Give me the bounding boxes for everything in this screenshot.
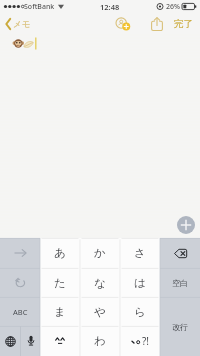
button[interactable]: あ	[40, 238, 80, 268]
staticText: た	[54, 276, 66, 290]
button[interactable]: 改行	[160, 297, 200, 356]
staticText: 完了	[174, 18, 193, 30]
staticText: SoftBank	[24, 2, 55, 12]
button[interactable]: Delete	[160, 238, 200, 268]
staticText: 12:48	[100, 2, 120, 12]
button[interactable]: は	[120, 268, 160, 297]
button[interactable]: Add attachment	[177, 216, 195, 234]
button[interactable]: や	[80, 297, 120, 326]
button[interactable]: Switch keyboard	[0, 326, 20, 356]
staticText: メモ	[13, 19, 31, 30]
staticText: か	[94, 246, 106, 260]
button[interactable]: ら	[120, 297, 160, 326]
staticText: あ	[54, 246, 66, 260]
staticText: は	[134, 276, 146, 290]
button[interactable]: ABC	[0, 297, 40, 326]
button[interactable]: Undo	[0, 268, 40, 297]
staticText: わ	[94, 334, 106, 348]
staticText: 空白	[172, 278, 188, 288]
staticText: ?!	[142, 334, 150, 348]
button[interactable]: な	[80, 268, 120, 297]
staticText: な	[94, 276, 106, 290]
staticText: ら	[134, 305, 146, 319]
staticText: 26%	[166, 2, 180, 12]
button[interactable]: Share	[149, 13, 165, 35]
button[interactable]: Dictation	[21, 326, 40, 356]
button[interactable]: Add people	[112, 13, 134, 35]
button[interactable]: 完了	[172, 13, 200, 35]
button[interactable]: ま	[40, 297, 80, 326]
button[interactable]: さ	[120, 238, 160, 268]
button[interactable]: Next candidate	[0, 238, 40, 268]
button[interactable]: わ	[80, 326, 120, 356]
button[interactable]: Emoticons	[40, 326, 80, 356]
staticText: さ	[134, 246, 146, 260]
button[interactable]: か	[80, 238, 120, 268]
staticText: 改行	[172, 322, 188, 332]
button[interactable]: た	[40, 268, 80, 297]
button[interactable]: メモ	[0, 13, 35, 35]
staticText: ま	[54, 305, 66, 319]
staticText: や	[94, 305, 106, 319]
button[interactable]: 空白	[160, 268, 200, 297]
button[interactable]: Punctuation	[120, 326, 160, 356]
staticText: ABC	[13, 307, 28, 317]
